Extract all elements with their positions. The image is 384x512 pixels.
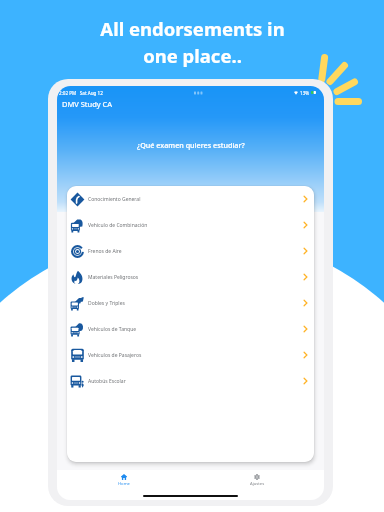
staticText: Vehículos de Pasajeros (88, 352, 142, 359)
button[interactable]: Vehículo de Combinación (67, 212, 314, 238)
other: Ajustes (254, 474, 260, 480)
button[interactable]: Autobús Escolar (67, 368, 314, 394)
staticText: one place.. (143, 43, 242, 68)
button[interactable]: Materiales Peligrosos (67, 264, 314, 290)
staticText: Conocimiento General (88, 196, 141, 203)
staticText: Vehículos de Tanque (88, 326, 137, 333)
staticText: Vehículo de Combinación (88, 222, 148, 229)
button[interactable]: Dobles y Triples (67, 290, 314, 316)
button[interactable]: Home (57, 473, 190, 488)
button[interactable]: Vehículos de Tanque (67, 316, 314, 342)
staticText: Autobús Escolar (88, 378, 126, 385)
staticText: All endorsements in (100, 16, 285, 41)
staticText: Home (118, 481, 130, 487)
button[interactable]: Conocimiento General (67, 186, 314, 212)
staticText: Dobles y Triples (88, 300, 125, 307)
button[interactable]: Vehículos de Pasajeros (67, 342, 314, 368)
staticText: DMV Study CA (62, 99, 113, 109)
staticText: 2:02 PM Sat Aug 12 (59, 90, 103, 96)
other: Home (121, 474, 127, 480)
button[interactable]: Frenos de Aire (67, 238, 314, 264)
button[interactable]: Ajustes (190, 473, 324, 488)
staticText: 13% (300, 90, 310, 96)
staticText: Materiales Peligrosos (88, 274, 139, 281)
staticText: Frenos de Aire (88, 248, 122, 255)
staticText: Ajustes (250, 481, 265, 487)
staticText: ¿Qué examen quieres estudiar? (137, 140, 245, 150)
